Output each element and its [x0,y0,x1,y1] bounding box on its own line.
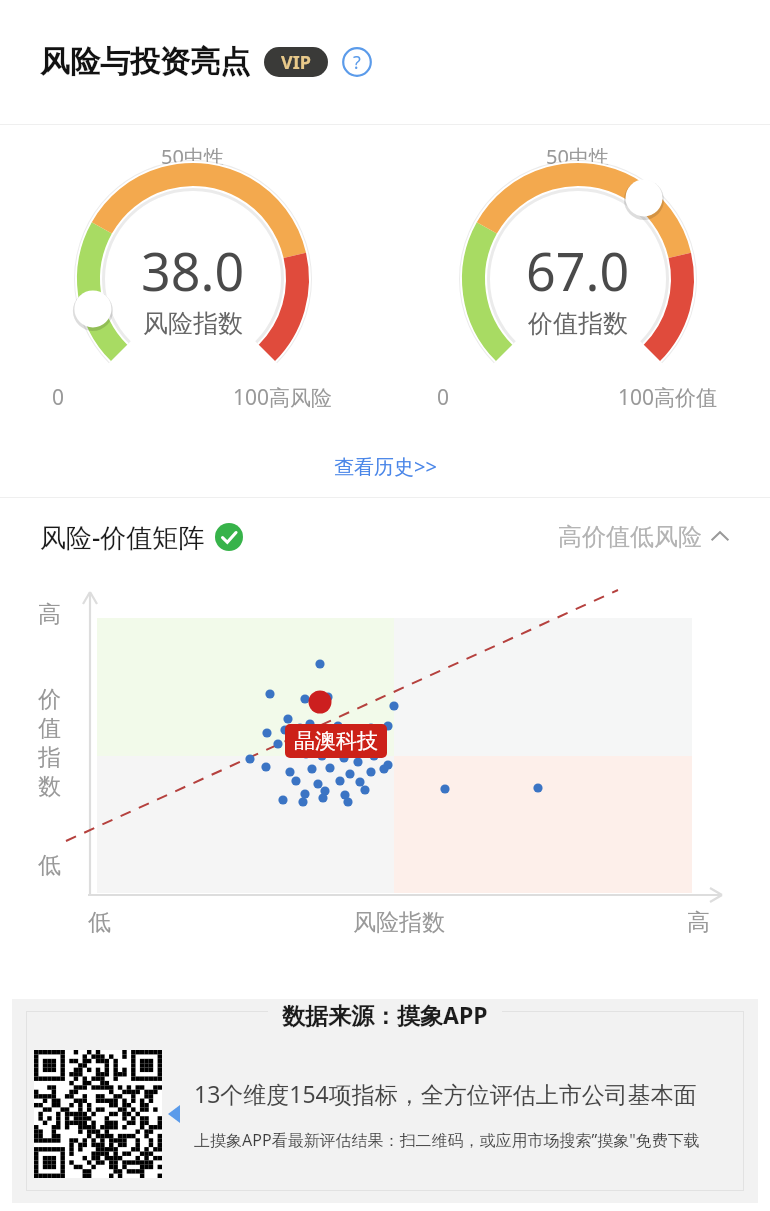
button[interactable]: 晶澳科技 [285,724,387,758]
staticText: 高价值低风险 [558,522,702,552]
staticText: 38.0 [141,235,245,306]
button[interactable]: 查看历史>> [318,447,453,486]
staticText: VIP [281,50,311,75]
button[interactable]: 帮助说明 [342,47,372,77]
staticText: 100高风险 [233,383,333,412]
staticText: 50中性 [546,143,609,170]
staticText: 上摸象APP看最新评估结果：扫二维码，或应用市场搜索”摸象"免费下载 [194,1129,700,1151]
staticText: 数据来源：摸象APP [282,999,488,1030]
staticText: 价 [38,685,61,714]
staticText: 高 [38,600,61,629]
staticText: 风险-价值矩阵 [40,519,205,555]
staticText: 67.0 [526,235,630,306]
staticText: 低 [88,908,111,937]
staticText: 风险指数 [353,908,445,937]
staticText: 晶澳科技 [294,728,378,754]
staticText: 数 [38,772,61,801]
staticText: 风险指数 [143,308,243,339]
staticText: 风险与投资亮点 [40,43,250,81]
staticText: 值 [38,714,61,743]
staticText: 0 [52,383,65,412]
button[interactable]: VIP [264,47,328,77]
staticText: 低 [38,851,61,880]
staticText: ? [353,50,361,75]
staticText: 0 [437,383,450,412]
button[interactable]: 高价值低风险 [558,522,730,552]
staticText: 50中性 [161,143,224,170]
staticText: 查看历史>> [334,453,437,480]
staticText: 价值指数 [528,308,628,339]
staticText: 13个维度154项指标，全方位评估上市公司基本面 [194,1078,697,1109]
staticText: 高 [687,908,710,937]
staticText: 100高价值 [618,383,718,412]
staticText: 指 [38,743,61,772]
